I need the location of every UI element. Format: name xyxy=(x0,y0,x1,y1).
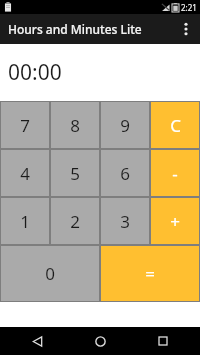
staticText: 9 xyxy=(120,114,130,137)
button[interactable]: = xyxy=(100,245,200,302)
button[interactable]: + xyxy=(150,197,200,245)
staticText: + xyxy=(170,210,180,233)
button[interactable]: Home xyxy=(85,327,115,355)
staticText: = xyxy=(145,262,155,285)
staticText: 6 xyxy=(120,162,130,185)
button[interactable]: 4 xyxy=(0,149,50,197)
button[interactable]: Recent apps xyxy=(148,327,178,355)
staticText: - xyxy=(172,162,178,185)
staticText: 2 xyxy=(70,210,80,233)
staticText: 00:00 xyxy=(8,58,62,87)
staticText: 2:21 xyxy=(181,2,197,13)
button[interactable]: 6 xyxy=(100,149,150,197)
staticText: Hours and Minutes Lite xyxy=(8,21,142,37)
button[interactable]: More options xyxy=(172,15,200,43)
button[interactable]: 8 xyxy=(50,101,100,149)
button[interactable]: 5 xyxy=(50,149,100,197)
staticText: 7 xyxy=(20,114,30,137)
staticText: 0 xyxy=(45,262,55,285)
button[interactable]: 0 xyxy=(0,245,100,302)
button[interactable]: 3 xyxy=(100,197,150,245)
staticText: 5 xyxy=(70,162,80,185)
staticText: C xyxy=(170,114,181,137)
button[interactable]: C xyxy=(150,101,200,149)
button[interactable]: 1 xyxy=(0,197,50,245)
staticText: 4 xyxy=(20,162,30,185)
button[interactable]: 2 xyxy=(50,197,100,245)
staticText: 8 xyxy=(70,114,80,137)
button[interactable]: 9 xyxy=(100,101,150,149)
staticText: 3 xyxy=(120,210,130,233)
button[interactable]: Back xyxy=(22,327,52,355)
staticText: 1 xyxy=(20,210,30,233)
button[interactable]: 7 xyxy=(0,101,50,149)
button[interactable]: - xyxy=(150,149,200,197)
